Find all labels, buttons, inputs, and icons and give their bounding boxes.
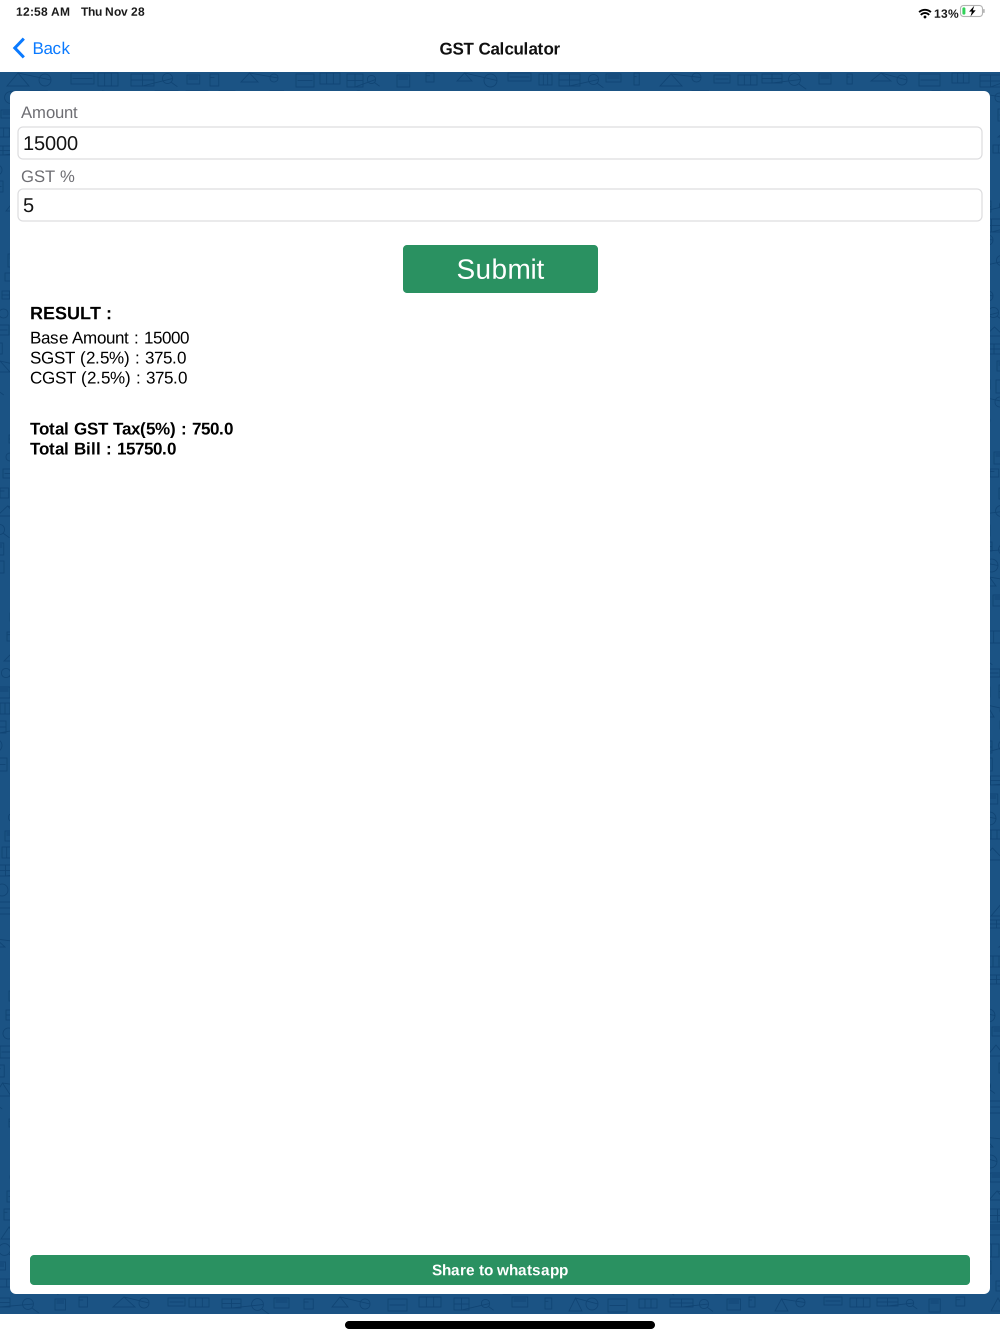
- button[interactable]: Back: [0, 29, 82, 67]
- staticText: 13%: [934, 7, 959, 20]
- button[interactable]: Submit: [403, 245, 598, 293]
- button[interactable]: Amount: [18, 127, 982, 159]
- staticText: Submit: [456, 253, 544, 285]
- staticText: Share to whatsapp: [432, 1261, 568, 1278]
- staticText: Base Amount : 15000: [30, 328, 189, 347]
- staticText: 12:58 AM: [16, 5, 70, 18]
- staticText: 5: [23, 194, 34, 216]
- staticText: Back: [32, 38, 70, 57]
- button[interactable]: Share to whatsapp: [30, 1255, 970, 1285]
- button[interactable]: GST percent: [18, 189, 982, 221]
- staticText: CGST (2.5%) : 375.0: [30, 368, 187, 387]
- staticText: 15000: [23, 132, 78, 154]
- staticText: RESULT :: [30, 303, 112, 323]
- staticText: Total Bill : 15750.0: [30, 439, 176, 458]
- staticText: GST Calculator: [439, 39, 560, 58]
- staticText: Thu Nov 28: [81, 5, 145, 18]
- staticText: Total GST Tax(5%) : 750.0: [30, 419, 233, 438]
- staticText: Amount: [21, 103, 78, 122]
- staticText: SGST (2.5%) : 375.0: [30, 348, 186, 367]
- staticText: GST %: [21, 167, 75, 186]
